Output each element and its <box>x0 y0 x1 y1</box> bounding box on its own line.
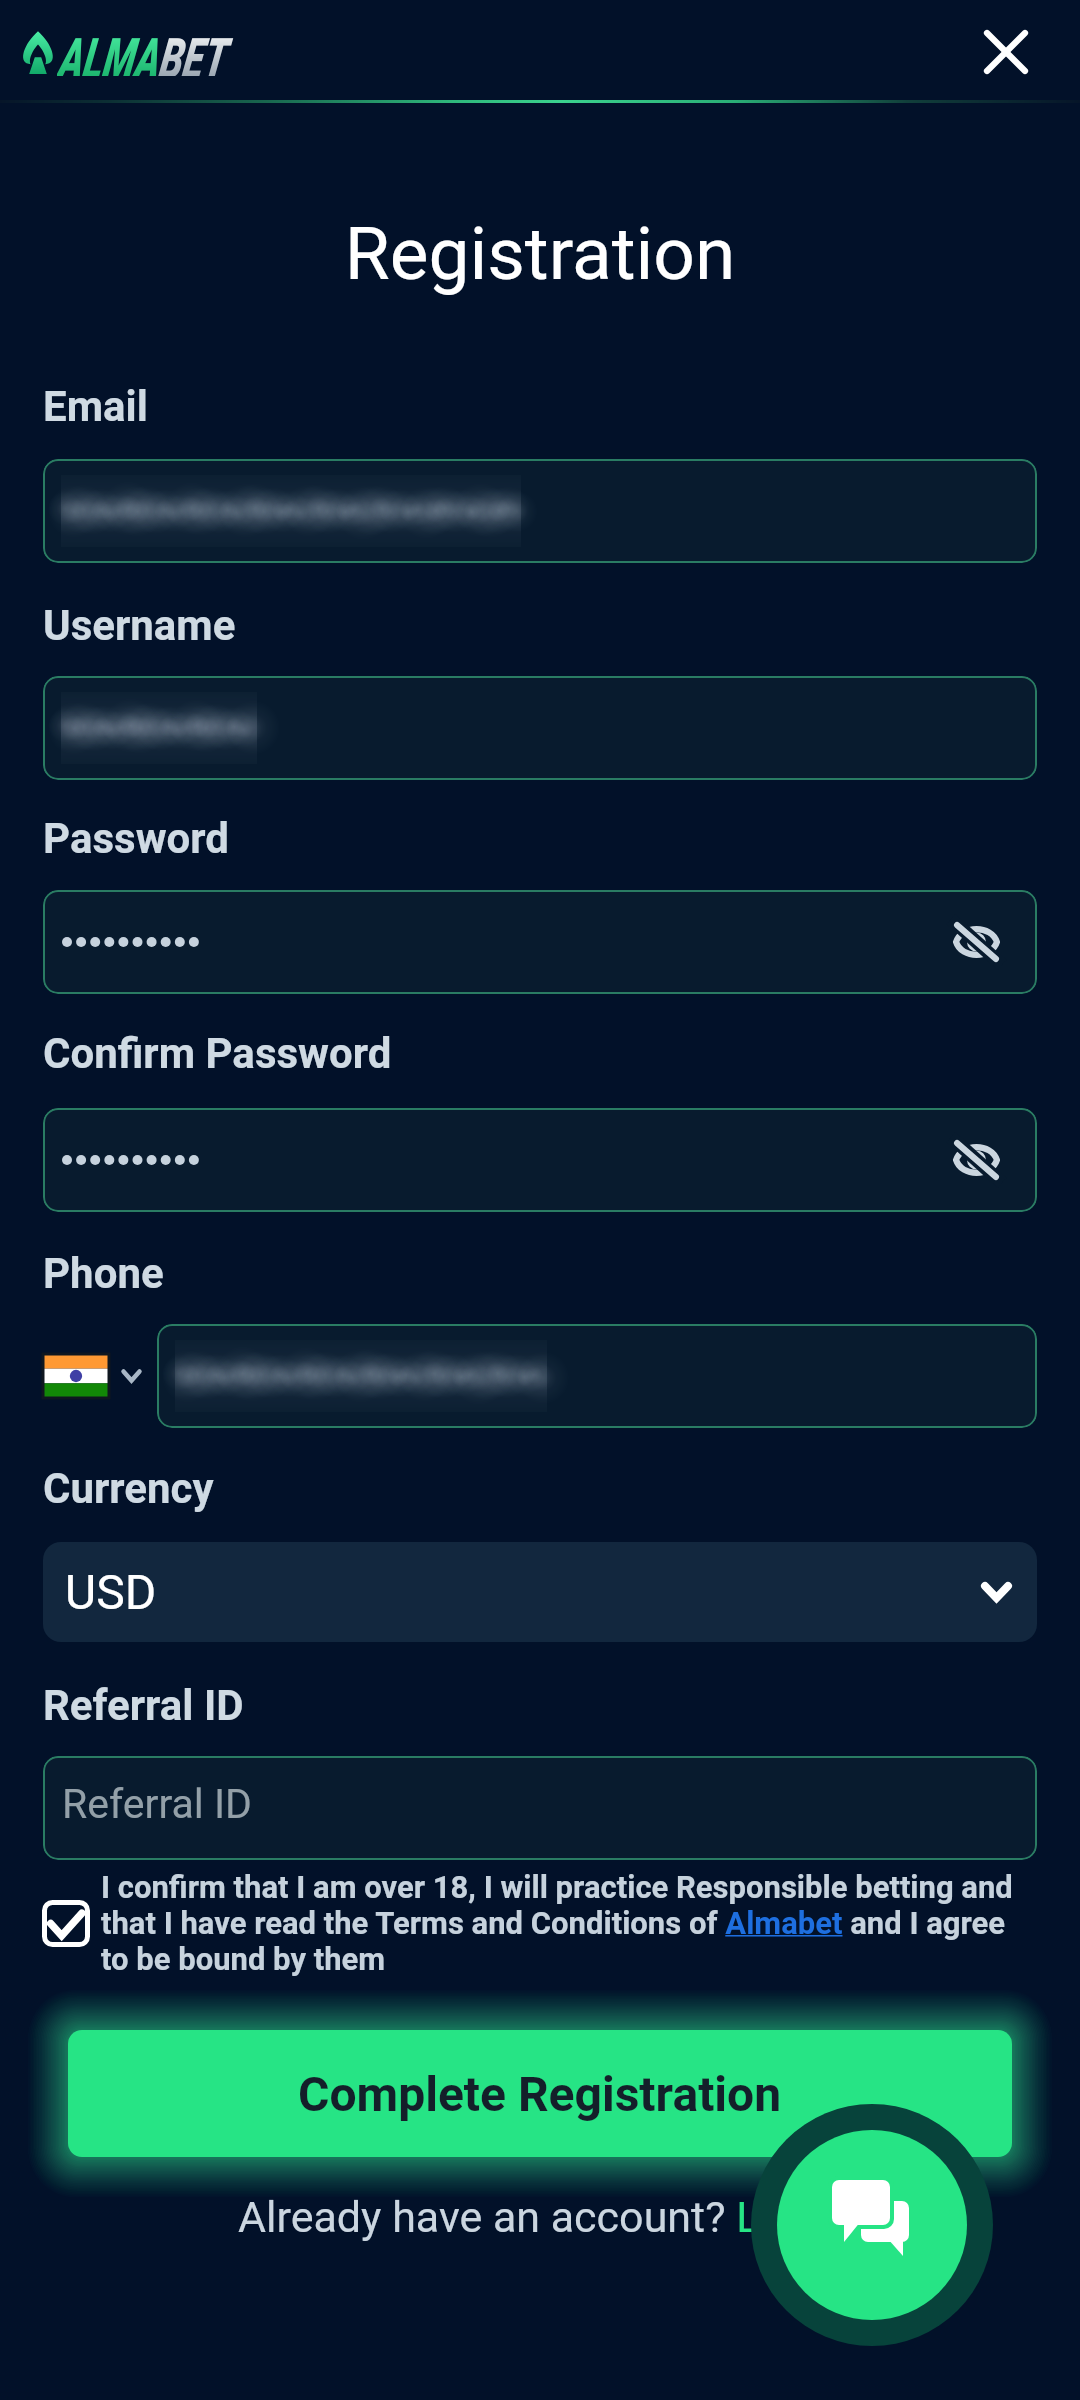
button[interactable]: Show password <box>43 890 1037 994</box>
button[interactable]: Accept terms <box>42 1900 90 1947</box>
staticText: Email <box>43 382 148 431</box>
staticText: Username <box>43 601 236 650</box>
button[interactable] <box>43 676 1037 780</box>
button[interactable]: Referral ID <box>43 1756 1037 1860</box>
staticText: Referral ID <box>62 1780 253 1828</box>
button[interactable]: Chat support <box>751 2104 993 2346</box>
staticText: Complete Registration <box>298 2066 782 2122</box>
staticText: Phone <box>43 1249 164 1298</box>
staticText: Confirm Password <box>43 1029 392 1078</box>
staticText: I confirm that I am over 18, I will prac… <box>101 1869 1023 1977</box>
button[interactable]: I confirm that I am over 18, I will prac… <box>101 1869 1023 1977</box>
button[interactable] <box>43 459 1037 563</box>
button[interactable]: Close <box>968 14 1044 90</box>
button[interactable]: Select country <box>43 1354 141 1398</box>
button[interactable]: Show password <box>938 904 1014 980</box>
staticText: Password <box>43 814 229 863</box>
button[interactable]: Show password <box>43 1108 1037 1212</box>
staticText: Registration <box>0 211 1080 297</box>
button[interactable]: Already have an account? Login <box>238 2192 843 2242</box>
button[interactable]: Show password <box>938 1122 1014 1198</box>
button[interactable]: USD <box>43 1542 1037 1642</box>
staticText: Currency <box>43 1464 214 1513</box>
button[interactable] <box>157 1324 1037 1428</box>
staticText: ALMABET <box>57 26 256 76</box>
staticText: USD <box>65 1564 157 1620</box>
staticText: Referral ID <box>43 1681 244 1730</box>
button[interactable]: Complete Registration <box>68 2030 1012 2157</box>
